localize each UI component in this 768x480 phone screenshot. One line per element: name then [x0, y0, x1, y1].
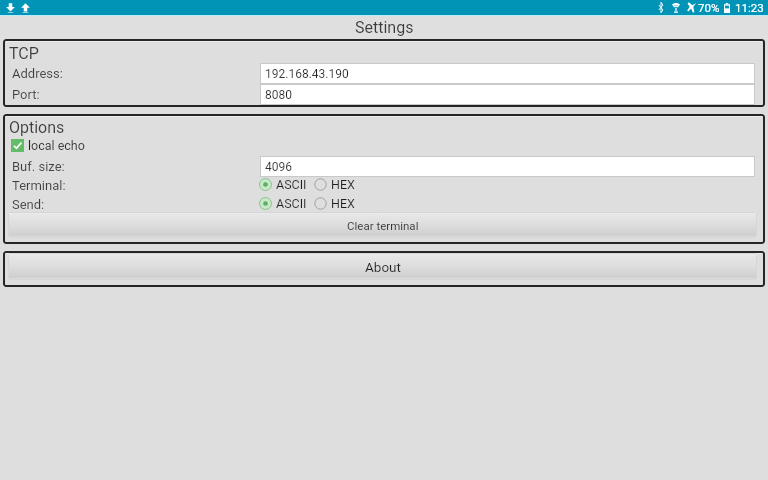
button[interactable]: local echo checkbox	[11, 137, 85, 153]
button[interactable]: 8080	[260, 84, 755, 105]
staticText: ASCII	[276, 177, 307, 192]
staticText: HEX	[331, 196, 355, 211]
staticText: 70%	[698, 1, 720, 14]
staticText: 11:23	[735, 1, 764, 14]
staticText: Options	[9, 118, 65, 137]
button[interactable]: HEX	[314, 194, 355, 212]
staticText: ASCII	[276, 196, 307, 211]
button[interactable]: 4096	[260, 156, 755, 177]
staticText: Clear terminal	[347, 219, 419, 232]
staticText: local echo	[28, 138, 85, 153]
staticText: Send:	[12, 197, 45, 212]
button[interactable]: HEX	[314, 175, 355, 193]
staticText: HEX	[331, 177, 355, 192]
staticText: 192.168.43.190	[265, 67, 349, 81]
other: local echo checkbox	[11, 139, 24, 152]
staticText: 4096	[265, 160, 292, 174]
button[interactable]: ASCII	[259, 194, 307, 212]
other: Upload	[20, 2, 31, 13]
button[interactable]: About	[8, 253, 757, 280]
staticText: Address:	[12, 66, 63, 81]
button[interactable]: Clear terminal	[8, 212, 757, 238]
staticText: Settings	[355, 18, 414, 37]
button[interactable]: 192.168.43.190	[260, 63, 755, 84]
staticText: About	[365, 259, 401, 275]
button[interactable]: ASCII	[259, 175, 307, 193]
staticText: Port:	[12, 87, 40, 102]
staticText: 8080	[265, 88, 292, 102]
other: Download	[5, 2, 16, 13]
staticText: Buf. size:	[12, 159, 65, 174]
staticText: Terminal:	[12, 178, 66, 193]
staticText: TCP	[9, 44, 39, 63]
